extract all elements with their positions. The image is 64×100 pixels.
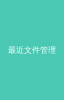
staticText: 最近文件管理 [8, 45, 56, 55]
